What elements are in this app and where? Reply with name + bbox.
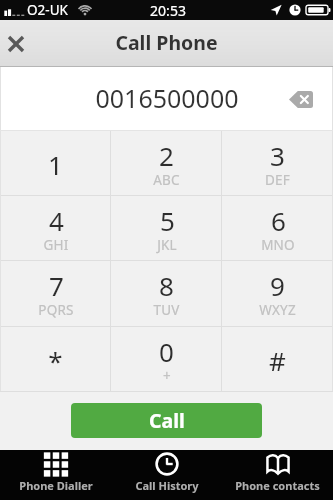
- button[interactable]: *: [0, 327, 111, 392]
- button[interactable]: 7: [0, 261, 111, 326]
- button[interactable]: Backspace: [284, 82, 318, 116]
- staticText: MNO: [261, 236, 295, 254]
- button[interactable]: 1: [0, 131, 111, 195]
- staticText: 4: [49, 203, 64, 238]
- staticText: 20:53: [150, 1, 186, 20]
- staticText: 7: [49, 268, 64, 303]
- staticText: *: [48, 343, 63, 378]
- button[interactable]: 6: [222, 196, 333, 260]
- staticText: WXYZ: [259, 301, 296, 319]
- staticText: 2: [159, 138, 174, 173]
- button[interactable]: Call History: [111, 450, 222, 500]
- button[interactable]: #: [222, 327, 333, 392]
- staticText: GHI: [43, 236, 69, 254]
- staticText: PQRS: [38, 301, 74, 319]
- staticText: TUV: [153, 301, 180, 319]
- staticText: 0: [159, 334, 174, 369]
- button[interactable]: Phone Dialler: [0, 450, 111, 500]
- button[interactable]: Phone contacts: [222, 450, 333, 500]
- staticText: 6: [271, 203, 286, 238]
- button[interactable]: 4: [0, 196, 111, 260]
- button[interactable]: Call: [71, 403, 262, 438]
- staticText: Phone contacts: [235, 478, 320, 493]
- staticText: Call Phone: [115, 29, 218, 56]
- staticText: 1: [48, 147, 63, 182]
- staticText: 3: [270, 138, 285, 173]
- staticText: +: [163, 367, 171, 385]
- staticText: O2-UK: [27, 1, 68, 19]
- staticText: #: [269, 343, 286, 378]
- button[interactable]: 9: [222, 261, 333, 326]
- button[interactable]: 0: [111, 327, 222, 392]
- staticText: ABC: [153, 171, 180, 189]
- staticText: 5: [160, 203, 175, 238]
- staticText: 8: [159, 268, 174, 303]
- staticText: JKL: [157, 236, 177, 254]
- staticText: Call: [149, 407, 185, 434]
- staticText: DEF: [265, 171, 290, 189]
- button[interactable]: 2: [111, 131, 222, 195]
- staticText: Call History: [135, 478, 199, 493]
- staticText: 0016500000: [95, 81, 239, 115]
- staticText: Phone Dialler: [19, 478, 93, 493]
- button[interactable]: Close: [1, 29, 31, 59]
- staticText: 9: [270, 268, 285, 303]
- button[interactable]: 5: [111, 196, 222, 260]
- button[interactable]: 8: [111, 261, 222, 326]
- button[interactable]: 3: [222, 131, 333, 195]
